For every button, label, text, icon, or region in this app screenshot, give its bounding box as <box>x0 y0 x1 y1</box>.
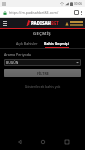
staticText: Açık Bahisler <box>16 41 38 46</box>
button[interactable]: More options <box>81 10 82 15</box>
staticText: Bahis Geçmişi <box>44 41 69 46</box>
button[interactable]: Bahis Geçmişi <box>43 41 70 48</box>
staticText: BET <box>51 20 59 26</box>
staticText: PADISAH <box>31 20 51 26</box>
other: Account <box>65 22 69 26</box>
button[interactable]: PADISAH <box>26 20 59 26</box>
button[interactable]: BUGÜN <box>4 59 81 66</box>
staticText: 00:06 <box>74 2 83 6</box>
staticText: GEÇMİŞ <box>33 31 52 37</box>
staticText: FİLTRE <box>37 71 49 76</box>
staticText: Gösterilecek bahis yok <box>0 84 85 89</box>
button[interactable]: Account <box>65 21 83 26</box>
staticText: https://m.padisahbet84.com/ <box>9 10 59 15</box>
button[interactable]: Menu <box>2 21 7 26</box>
button[interactable]: Açık Bahisler <box>15 41 39 48</box>
button[interactable]: FİLTRE <box>4 69 81 77</box>
button[interactable]: Home <box>38 137 47 146</box>
button[interactable]: Back <box>15 137 24 146</box>
staticText: Arama Periyodu <box>4 52 32 57</box>
other: Secure connection <box>3 11 7 15</box>
button[interactable]: Tabs <box>74 10 79 15</box>
button[interactable]: Recent apps <box>62 137 71 146</box>
staticText: BUGÜN <box>6 60 19 65</box>
